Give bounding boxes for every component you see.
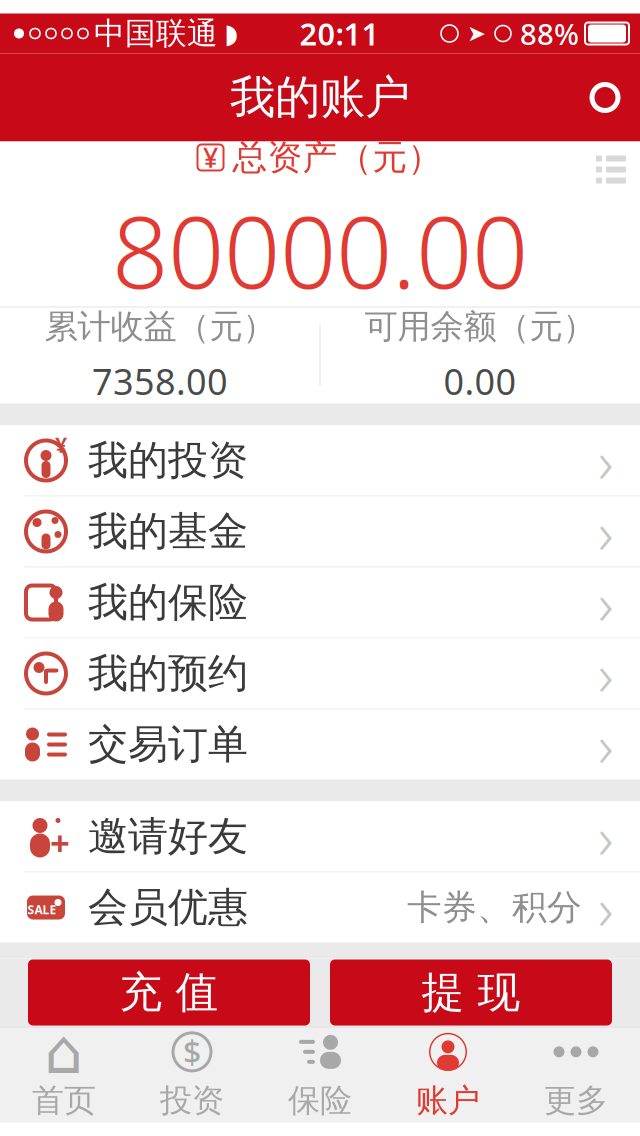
button[interactable]: 设置 bbox=[570, 62, 640, 132]
staticText: 总资产（元） bbox=[232, 136, 442, 179]
staticText: 投资 bbox=[160, 1081, 224, 1120]
staticText: 会员优惠 bbox=[88, 883, 248, 932]
staticText: 卡券、积分 bbox=[407, 886, 582, 929]
staticText: 7358.00 bbox=[92, 357, 228, 405]
staticText: 20:11 bbox=[299, 13, 379, 54]
button[interactable]: ¥ bbox=[0, 425, 640, 495]
button[interactable]: 账户 bbox=[384, 1026, 512, 1122]
staticText: ➤ bbox=[467, 21, 486, 46]
staticText: + bbox=[50, 819, 70, 865]
staticText: 88% bbox=[520, 14, 579, 53]
staticText: ¥ bbox=[203, 140, 218, 175]
button[interactable]: 保险 bbox=[256, 1026, 384, 1122]
staticText: 我的预约 bbox=[88, 649, 248, 698]
staticText: › bbox=[598, 492, 614, 570]
button[interactable]: 我的保险 bbox=[0, 567, 640, 637]
staticText: 可用余额（元） bbox=[364, 306, 595, 347]
button[interactable]: 账单明细 bbox=[582, 141, 640, 197]
button[interactable]: SALE bbox=[0, 872, 640, 942]
staticText: 累计收益（元） bbox=[44, 306, 275, 347]
staticText: 账户 bbox=[416, 1081, 480, 1120]
button[interactable]: 更多 bbox=[512, 1026, 640, 1122]
staticText: 保险 bbox=[288, 1081, 352, 1120]
button[interactable]: 我的预约 bbox=[0, 638, 640, 708]
staticText: 首页 bbox=[32, 1081, 96, 1120]
staticText: 我的基金 bbox=[88, 507, 248, 556]
button[interactable]: 提 现 bbox=[330, 959, 612, 1025]
staticText: 0.00 bbox=[443, 357, 516, 405]
button[interactable]: 充 值 bbox=[28, 959, 310, 1025]
staticText: 邀请好友 bbox=[88, 812, 248, 861]
staticText: $ bbox=[183, 1031, 201, 1073]
staticText: 我的保险 bbox=[88, 578, 248, 627]
staticText: 中国联通 bbox=[94, 15, 218, 52]
staticText: ◗ bbox=[224, 18, 238, 49]
staticText: › bbox=[598, 705, 614, 783]
staticText: › bbox=[598, 868, 614, 946]
button[interactable]: 我的基金 bbox=[0, 496, 640, 566]
staticText: 更多 bbox=[544, 1081, 608, 1120]
button[interactable]: + bbox=[0, 801, 640, 871]
button[interactable]: $ bbox=[128, 1026, 256, 1122]
staticText: 我的投资 bbox=[88, 436, 248, 485]
staticText: ¥ bbox=[55, 430, 67, 459]
staticText: › bbox=[598, 563, 614, 641]
staticText: › bbox=[598, 797, 614, 875]
staticText: 我的账户 bbox=[230, 70, 410, 125]
staticText: 提 现 bbox=[421, 966, 520, 1019]
button[interactable]: ⌂ bbox=[0, 1026, 128, 1122]
staticText: 充 值 bbox=[119, 966, 218, 1019]
staticText: SALE bbox=[27, 901, 56, 917]
button[interactable]: 交易订单 bbox=[0, 709, 640, 779]
staticText: › bbox=[598, 421, 614, 499]
staticText: › bbox=[598, 634, 614, 712]
staticText: ⌂ bbox=[44, 1017, 83, 1087]
staticText: 80000.00 bbox=[112, 185, 528, 316]
staticText: 交易订单 bbox=[88, 720, 248, 769]
